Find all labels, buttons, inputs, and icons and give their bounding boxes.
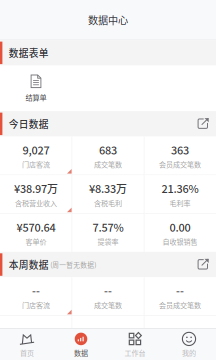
button[interactable]: 导出今日数据 — [190, 111, 216, 137]
staticText: 我的 — [182, 347, 196, 358]
staticText: 毛利率 — [169, 198, 190, 208]
staticText: 会员成交笔数 — [159, 300, 201, 310]
staticText: 0.00 — [169, 219, 190, 235]
staticText: 21.36% — [161, 180, 198, 196]
staticText: -- — [104, 321, 112, 337]
staticText: 门店客流 — [22, 300, 50, 310]
button[interactable]: 我的 — [162, 329, 216, 360]
staticText: 客单价 — [25, 236, 46, 246]
staticText: -- — [32, 321, 40, 337]
staticText: 毛利率 — [169, 338, 190, 349]
staticText: 数据中心 — [88, 12, 128, 27]
staticText: 提袋率 — [97, 236, 118, 246]
staticText: 今日数据 — [9, 117, 49, 131]
staticText: 含税毛利 — [94, 198, 122, 208]
staticText: ¥38.97万 — [14, 180, 58, 196]
staticText: 含税营业收入 — [15, 198, 57, 208]
staticText: 结算单 — [25, 92, 46, 102]
staticText: 自收银销售 — [162, 236, 197, 246]
staticText: 成交笔数 — [94, 300, 122, 310]
staticText: -- — [176, 282, 184, 298]
staticText: -- — [104, 282, 112, 298]
staticText: ¥570.64 — [16, 219, 55, 235]
staticText: 含税营业收入 — [15, 338, 57, 349]
staticText: (周一暂无数据) — [50, 260, 96, 269]
button[interactable]: 工作台 — [108, 329, 162, 360]
staticText: 数据 — [74, 347, 88, 358]
staticText: -- — [176, 321, 184, 337]
staticText: 363 — [171, 142, 189, 158]
button[interactable]: 结算单 — [12, 66, 60, 111]
staticText: 683 — [99, 142, 117, 158]
staticText: 会员成交笔数 — [159, 159, 201, 169]
staticText: 门店客流 — [22, 159, 50, 169]
staticText: 7.57% — [92, 219, 123, 235]
staticText: 本周数据 — [9, 257, 49, 272]
staticText: 工作台 — [124, 347, 145, 358]
staticText: 9,027 — [22, 142, 49, 158]
staticText: 首页 — [20, 347, 34, 358]
button[interactable]: 数据 — [54, 329, 108, 360]
button[interactable]: 首页 — [0, 329, 54, 360]
staticText: ¥8.33万 — [89, 180, 127, 196]
staticText: 数据表单 — [9, 46, 49, 60]
staticText: -- — [32, 282, 40, 298]
button[interactable]: 导出本周数据 — [190, 252, 216, 277]
staticText: 成交笔数 — [94, 159, 122, 169]
